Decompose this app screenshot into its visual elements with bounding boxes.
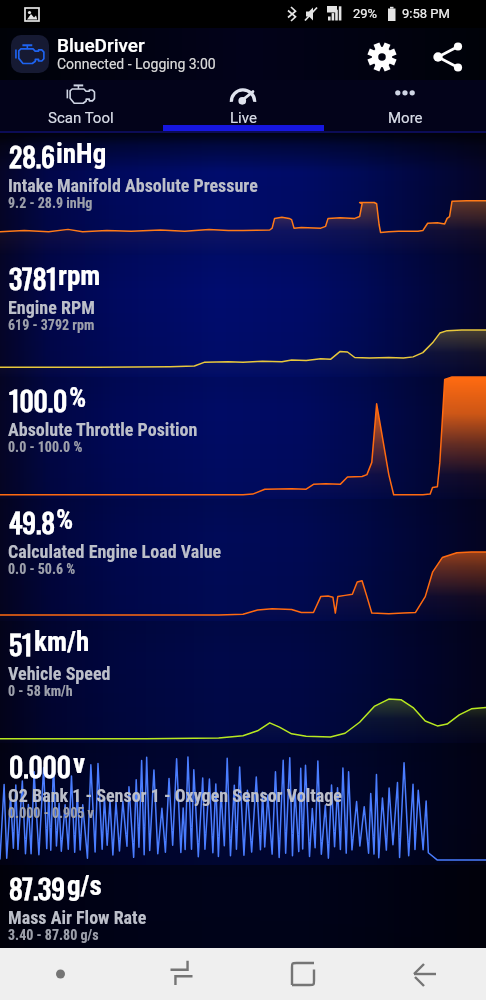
button[interactable]: 28.6: [0, 133, 486, 255]
staticText: 619 - 3792 rpm: [8, 317, 95, 333]
staticText: 0.000 - 0.905 v: [8, 805, 94, 821]
button[interactable]: Share: [427, 35, 471, 79]
staticText: More: [388, 109, 423, 127]
staticText: inHg: [56, 138, 107, 170]
staticText: Connected - Logging 3:00: [57, 56, 216, 72]
button[interactable]: Menu: [0, 948, 121, 1000]
staticText: 9.2 - 28.9 inHg: [8, 195, 93, 211]
staticText: 100.0: [9, 379, 68, 420]
staticText: rpm: [58, 260, 101, 292]
button[interactable]: 0.000: [0, 743, 486, 865]
staticText: v: [73, 748, 86, 780]
staticText: Mass Air Flow Rate: [8, 907, 147, 928]
staticText: 0 - 58 km/h: [8, 683, 73, 699]
staticText: 0.0 - 100.0 %: [8, 439, 83, 455]
staticText: Calculated Engine Load Value: [8, 541, 222, 562]
staticText: g/s: [67, 870, 102, 902]
staticText: %: [56, 504, 74, 536]
staticText: Engine RPM: [8, 297, 95, 318]
staticText: BlueDriver: [57, 34, 145, 56]
staticText: Scan Tool: [48, 109, 114, 127]
staticText: 3.40 - 87.80 g/s: [8, 927, 99, 943]
button[interactable]: 51: [0, 621, 486, 743]
button[interactable]: Back: [364, 948, 486, 1000]
staticText: Vehicle Speed: [8, 663, 111, 684]
button[interactable]: 87.39: [0, 865, 486, 948]
staticText: Live: [230, 109, 257, 127]
staticText: Intake Manifold Absolute Pressure: [8, 175, 258, 196]
button[interactable]: 49.8: [0, 499, 486, 621]
staticText: %: [69, 382, 87, 414]
staticText: 3781: [9, 257, 57, 298]
button[interactable]: 3781: [0, 255, 486, 377]
staticText: 28.6: [9, 135, 55, 176]
staticText: O2 Bank 1 - Sensor 1 - Oxygen Sensor Vol…: [8, 785, 342, 806]
button[interactable]: Live: [162, 80, 324, 133]
staticText: 0.000: [9, 745, 72, 786]
staticText: 0.0 - 50.6 %: [8, 561, 76, 577]
staticText: 51: [9, 623, 33, 664]
staticText: 49.8: [9, 501, 55, 542]
staticText: 9:58 PM: [402, 6, 450, 21]
button[interactable]: Scan Tool: [0, 80, 162, 133]
staticText: km/h: [34, 626, 90, 658]
staticText: 29%: [353, 6, 378, 21]
staticText: 87.39: [9, 867, 66, 908]
button[interactable]: Recents: [121, 948, 242, 1000]
button[interactable]: 100.0: [0, 377, 486, 499]
button[interactable]: More: [324, 80, 486, 133]
staticText: Absolute Throttle Position: [8, 419, 198, 440]
button[interactable]: Settings: [360, 35, 404, 79]
button[interactable]: Home: [242, 948, 364, 1000]
